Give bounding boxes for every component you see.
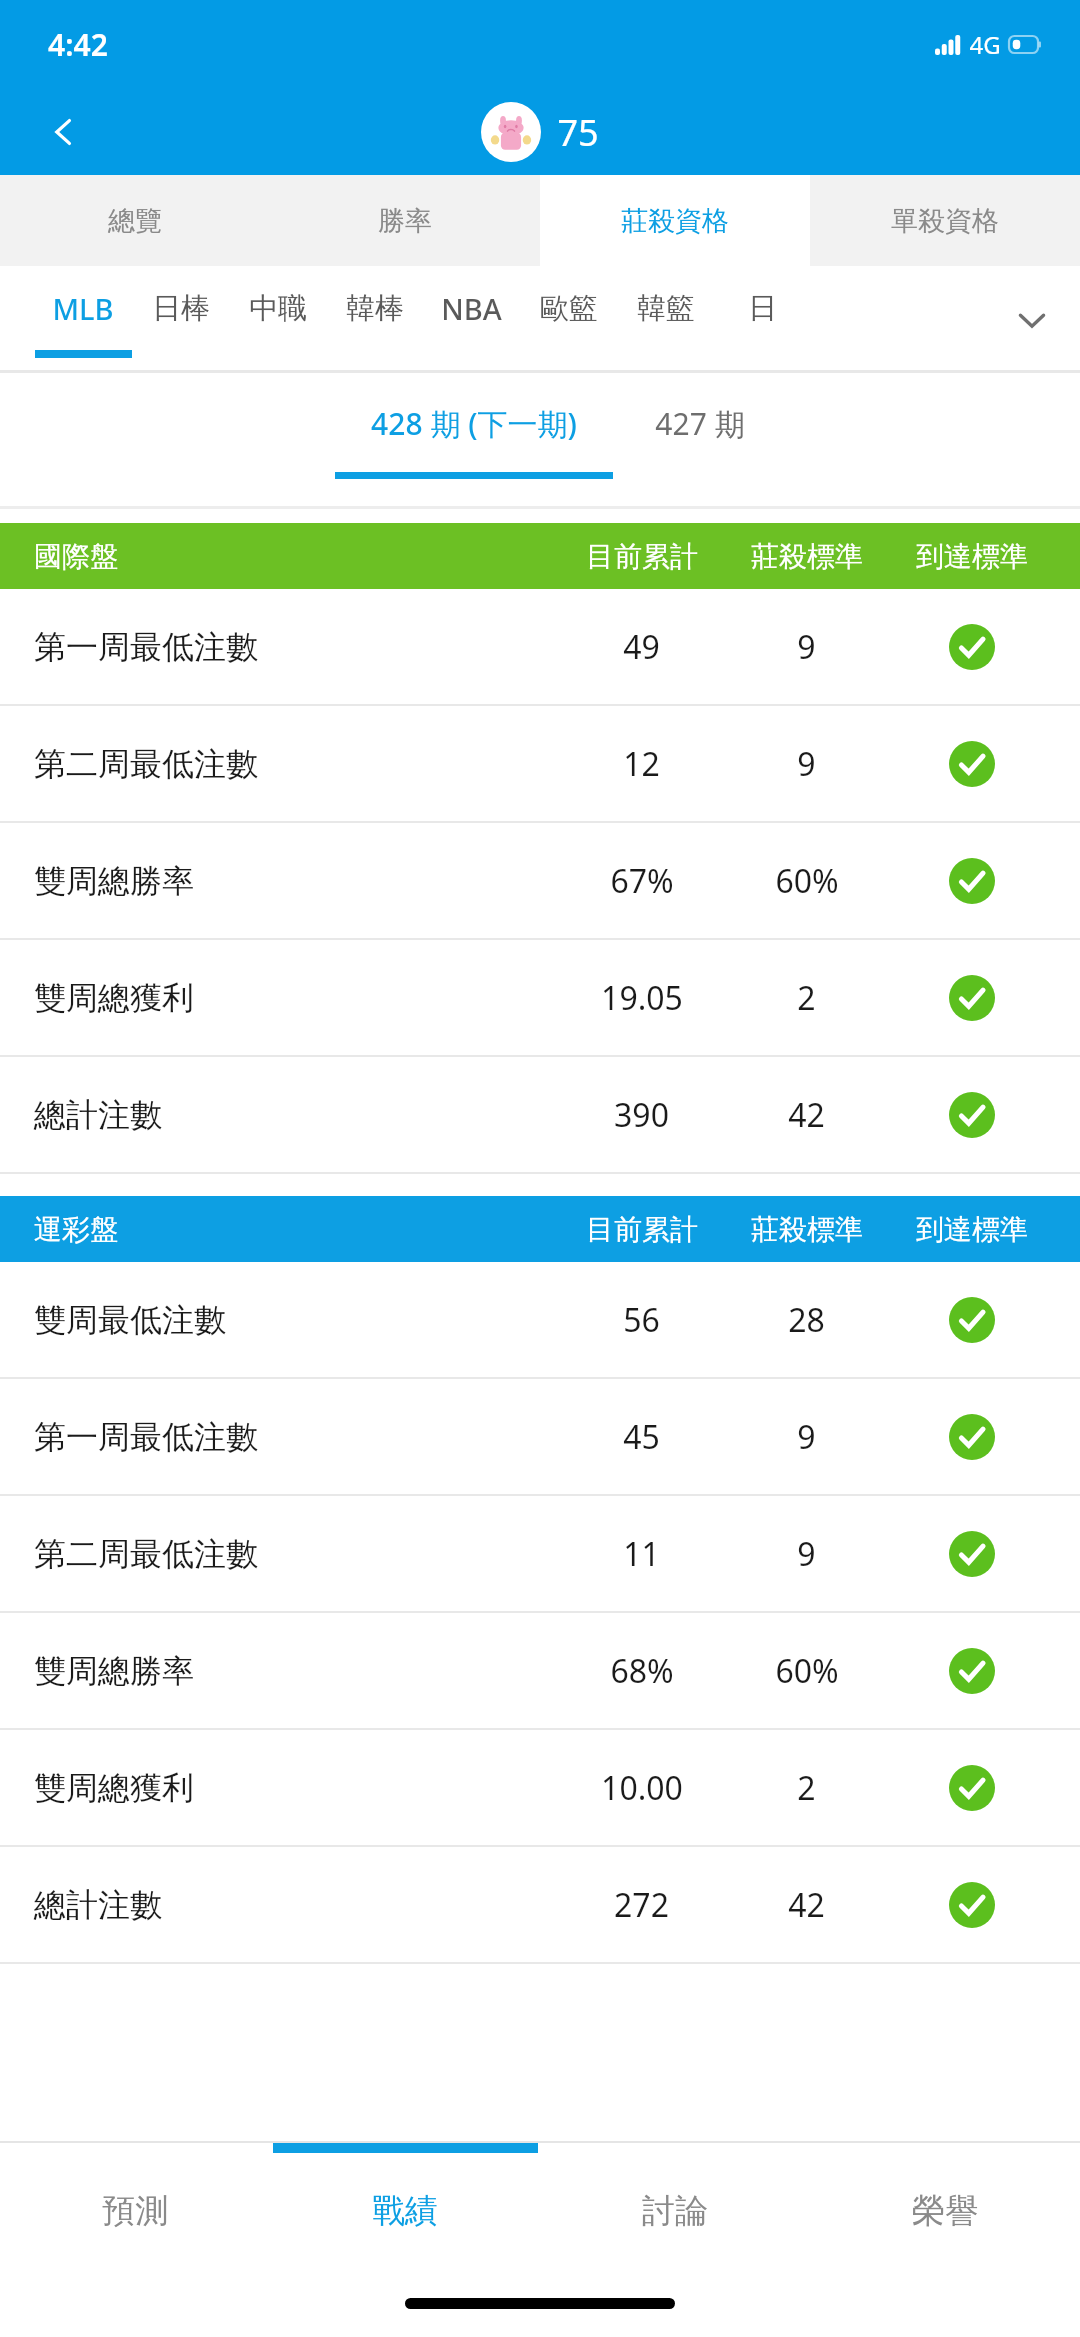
button[interactable]: 總計注數 xyxy=(0,1847,1080,1964)
staticText: 歐籃 xyxy=(540,290,598,327)
staticText: 第一周最低注數 xyxy=(34,1417,258,1457)
button[interactable]: 單殺資格 xyxy=(810,175,1080,266)
button[interactable]: 韓棒 xyxy=(326,266,423,373)
button[interactable]: 雙周總獲利 xyxy=(0,1730,1080,1847)
staticText: NBA xyxy=(441,289,502,328)
other: Met standard xyxy=(949,741,995,787)
staticText: 總覽 xyxy=(108,204,162,238)
staticText: 莊殺標準 xyxy=(751,1212,863,1247)
button[interactable]: 雙周最低注數 xyxy=(0,1262,1080,1379)
staticText: 雙周總獲利 xyxy=(34,1768,194,1808)
staticText: 67% xyxy=(610,859,674,903)
staticText: 28 xyxy=(788,1298,825,1342)
button[interactable]: 第一周最低注數 xyxy=(0,589,1080,706)
button[interactable]: 韓籃 xyxy=(617,266,714,373)
staticText: 56 xyxy=(623,1298,660,1342)
button[interactable]: 428 期 (下一期) xyxy=(335,403,613,479)
staticText: 427 期 xyxy=(655,403,745,444)
staticText: 總計注數 xyxy=(34,1095,162,1135)
button[interactable]: 日 xyxy=(714,266,811,373)
staticText: 韓籃 xyxy=(637,290,695,327)
staticText: 討論 xyxy=(642,2190,708,2232)
staticText: 到達標準 xyxy=(916,539,1028,574)
staticText: 中職 xyxy=(249,290,307,327)
staticText: 4G xyxy=(969,28,1001,61)
button[interactable]: 日棒 xyxy=(132,266,229,373)
staticText: 日 xyxy=(748,290,777,327)
staticText: 9 xyxy=(797,742,816,786)
staticText: 雙周最低注數 xyxy=(34,1300,226,1340)
other: Met standard xyxy=(949,1765,995,1811)
button[interactable]: 預測 xyxy=(0,2153,270,2269)
button[interactable]: 第二周最低注數 xyxy=(0,706,1080,823)
staticText: 雙周總勝率 xyxy=(34,861,194,901)
staticText: 到達標準 xyxy=(916,1212,1028,1247)
staticText: 60% xyxy=(775,859,839,903)
staticText: 49 xyxy=(623,625,660,669)
button[interactable]: 第二周最低注數 xyxy=(0,1496,1080,1613)
staticText: 運彩盤 xyxy=(34,1212,118,1247)
staticText: 11 xyxy=(623,1532,660,1576)
button[interactable]: 中職 xyxy=(229,266,326,373)
button[interactable]: 總計注數 xyxy=(0,1057,1080,1174)
staticText: 428 期 (下一期) xyxy=(371,403,577,444)
button[interactable]: 雙周總勝率 xyxy=(0,1613,1080,1730)
staticText: 預測 xyxy=(102,2190,168,2232)
other: Met standard xyxy=(949,1882,995,1928)
button[interactable]: 雙周總獲利 xyxy=(0,940,1080,1057)
button[interactable]: 75 xyxy=(481,102,599,162)
staticText: 莊殺標準 xyxy=(751,539,863,574)
staticText: 目前累計 xyxy=(586,1212,698,1247)
button[interactable]: MLB xyxy=(34,266,132,373)
other: Met standard xyxy=(949,1297,995,1343)
staticText: 總計注數 xyxy=(34,1885,162,1925)
button[interactable]: 第一周最低注數 xyxy=(0,1379,1080,1496)
other: Met standard xyxy=(949,1092,995,1138)
staticText: 42 xyxy=(788,1883,825,1927)
staticText: 19.05 xyxy=(601,976,683,1020)
button[interactable]: 雙周總勝率 xyxy=(0,823,1080,940)
button[interactable]: 勝率 xyxy=(270,175,540,266)
staticText: 10.00 xyxy=(601,1766,683,1810)
button[interactable]: 歐籃 xyxy=(520,266,617,373)
staticText: 42 xyxy=(788,1093,825,1137)
staticText: 12 xyxy=(623,742,660,786)
staticText: 9 xyxy=(797,1415,816,1459)
button[interactable]: Expand leagues xyxy=(984,266,1080,373)
staticText: 9 xyxy=(797,1532,816,1576)
staticText: 9 xyxy=(797,625,816,669)
other: Met standard xyxy=(949,858,995,904)
other: Met standard xyxy=(949,1414,995,1460)
staticText: MLB xyxy=(52,289,114,328)
button[interactable]: 427 期 xyxy=(655,403,745,479)
staticText: 韓棒 xyxy=(346,290,404,327)
staticText: 390 xyxy=(614,1093,669,1137)
staticText: 目前累計 xyxy=(586,539,698,574)
staticText: 第一周最低注數 xyxy=(34,627,258,667)
button[interactable]: 榮譽 xyxy=(810,2153,1080,2269)
staticText: 莊殺資格 xyxy=(621,204,729,238)
button[interactable]: Back xyxy=(32,100,96,164)
staticText: 272 xyxy=(614,1883,669,1927)
button[interactable]: NBA xyxy=(423,266,520,373)
staticText: 勝率 xyxy=(378,204,432,238)
button[interactable]: 戰績 xyxy=(270,2153,540,2269)
staticText: 45 xyxy=(623,1415,660,1459)
staticText: 60% xyxy=(775,1649,839,1693)
other: Met standard xyxy=(949,1648,995,1694)
staticText: 日棒 xyxy=(152,290,210,327)
staticText: 第二周最低注數 xyxy=(34,1534,258,1574)
staticText: 68% xyxy=(610,1649,674,1693)
staticText: 2 xyxy=(797,1766,816,1810)
button[interactable]: 莊殺資格 xyxy=(540,175,810,266)
staticText: 雙周總勝率 xyxy=(34,1651,194,1691)
staticText: 國際盤 xyxy=(34,539,118,574)
staticText: 2 xyxy=(797,976,816,1020)
button[interactable]: 討論 xyxy=(540,2153,810,2269)
other: Met standard xyxy=(949,975,995,1021)
staticText: 單殺資格 xyxy=(891,204,999,238)
staticText: 榮譽 xyxy=(912,2190,978,2232)
other: Met standard xyxy=(949,624,995,670)
staticText: 75 xyxy=(557,108,599,157)
button[interactable]: 總覽 xyxy=(0,175,270,266)
